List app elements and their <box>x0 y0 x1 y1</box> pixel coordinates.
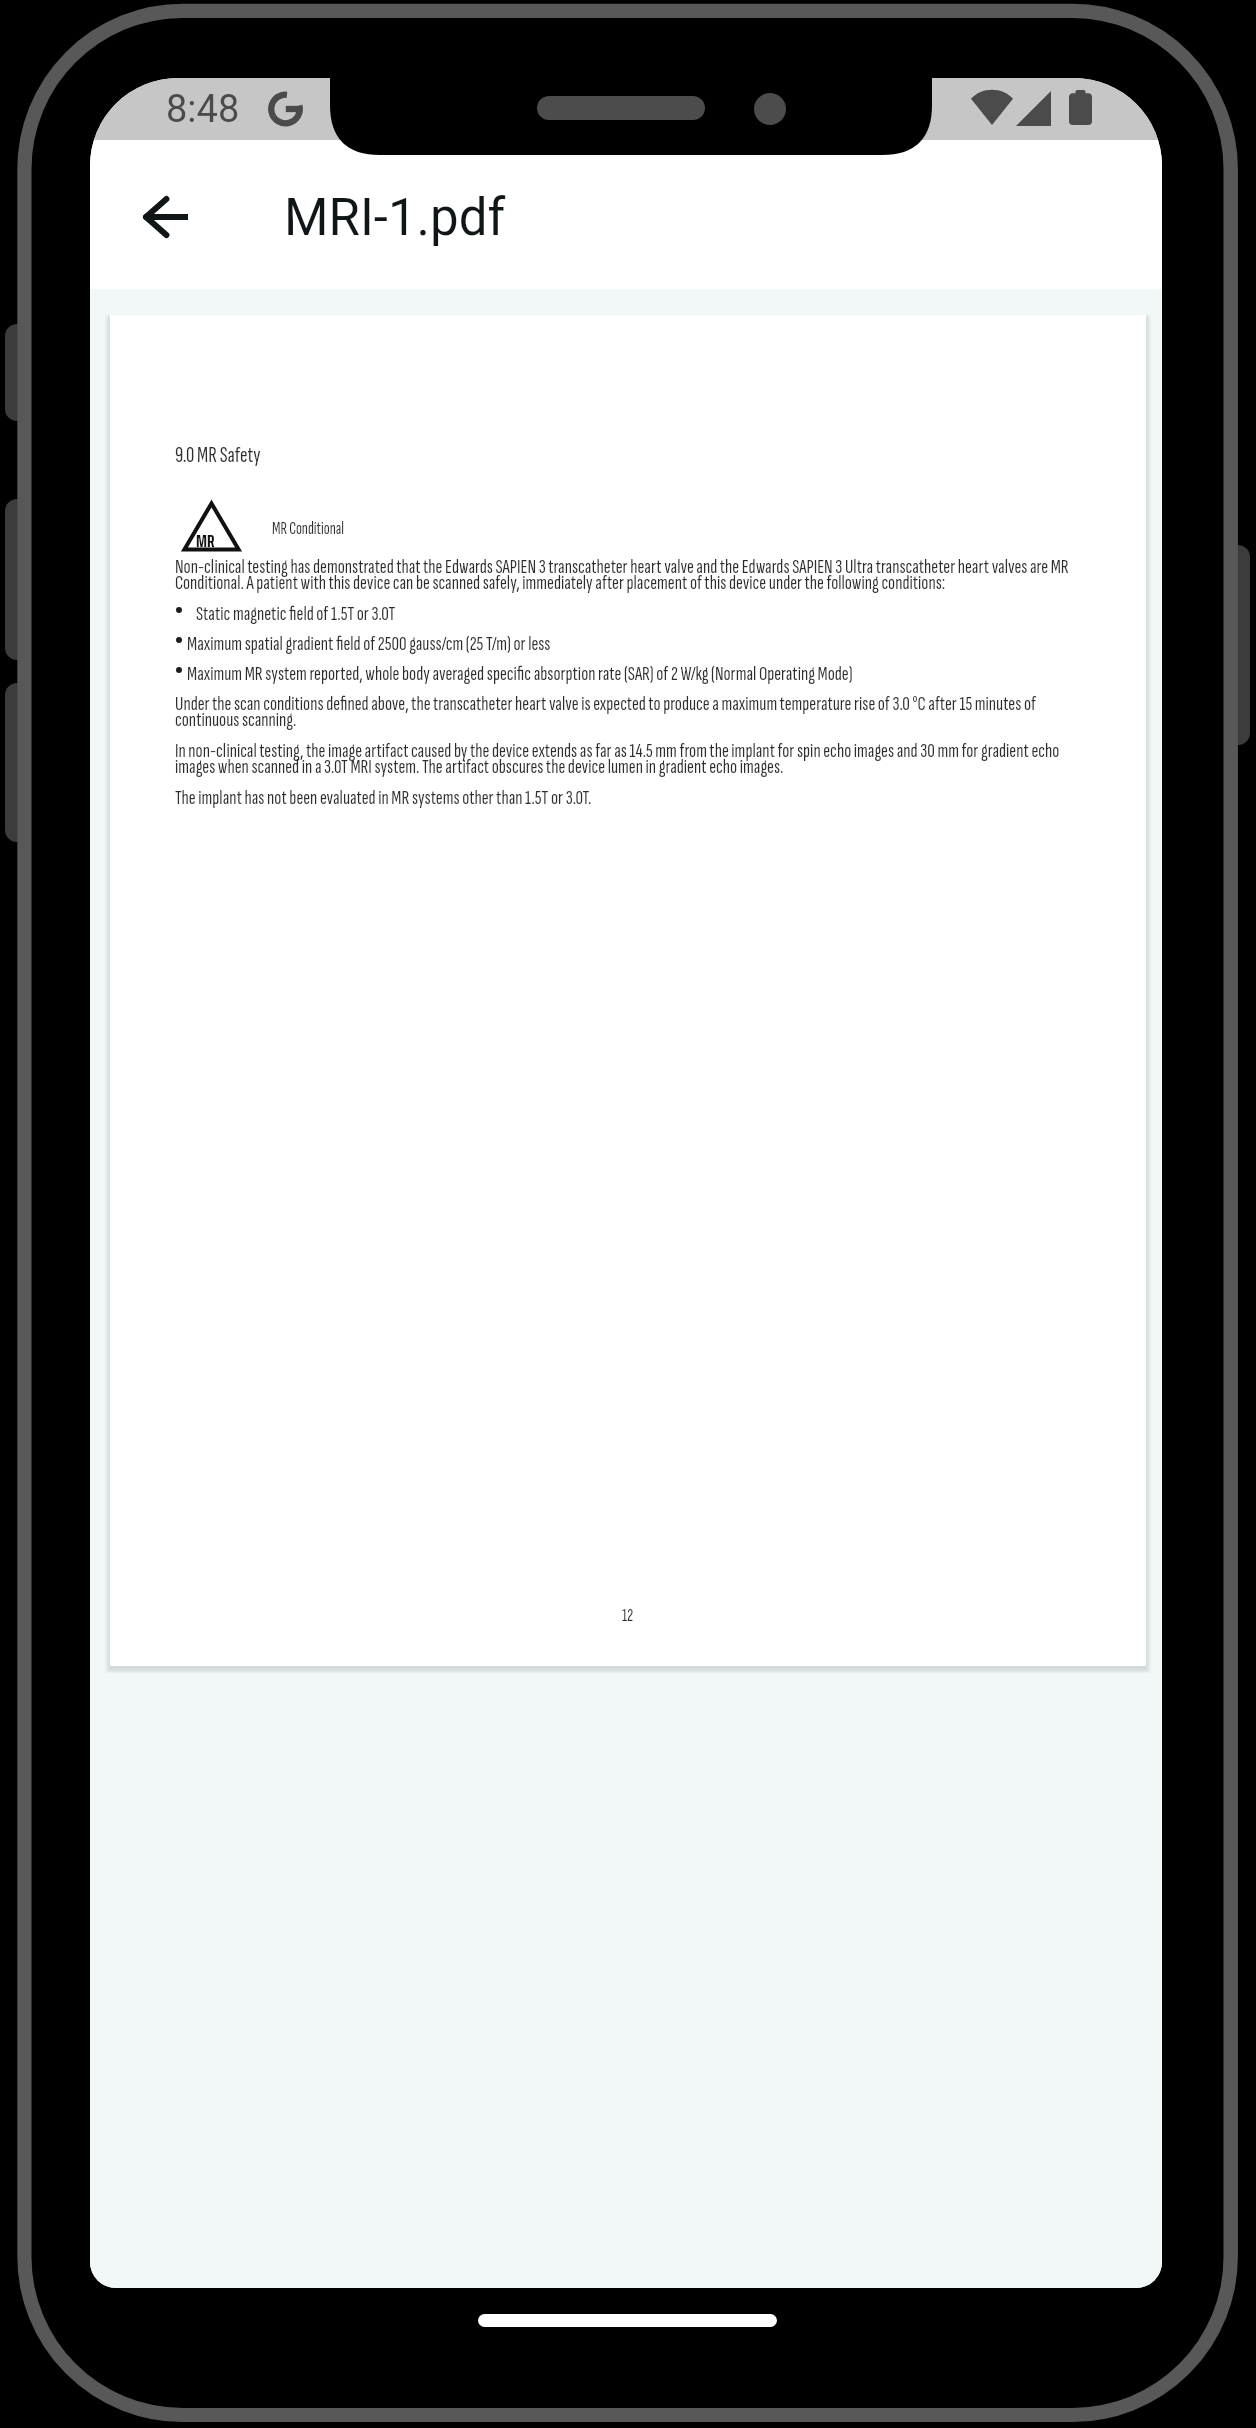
staticText: In non-clinical testing, the image artif… <box>175 738 1076 780</box>
staticText: MR <box>196 527 215 555</box>
staticText: 8:48 <box>166 87 240 132</box>
staticText: 12 <box>622 1605 634 1627</box>
staticText: MRI-1.pdf <box>284 188 506 248</box>
staticText: Non-clinical testing has demonstrated th… <box>175 554 1076 596</box>
staticText: The implant has not been evaluated in MR… <box>175 785 592 810</box>
button[interactable]: Back <box>113 165 217 269</box>
staticText: 9.0 MR Safety <box>175 441 261 469</box>
staticText: Static magnetic field of 1.5T or 3.0T <box>196 601 396 626</box>
staticText: Maximum MR system reported, whole body a… <box>187 661 853 686</box>
staticText: Maximum spatial gradient field of 2500 g… <box>187 631 551 656</box>
staticText: MR Conditional <box>272 518 345 539</box>
staticText: Under the scan conditions defined above,… <box>175 691 1076 733</box>
